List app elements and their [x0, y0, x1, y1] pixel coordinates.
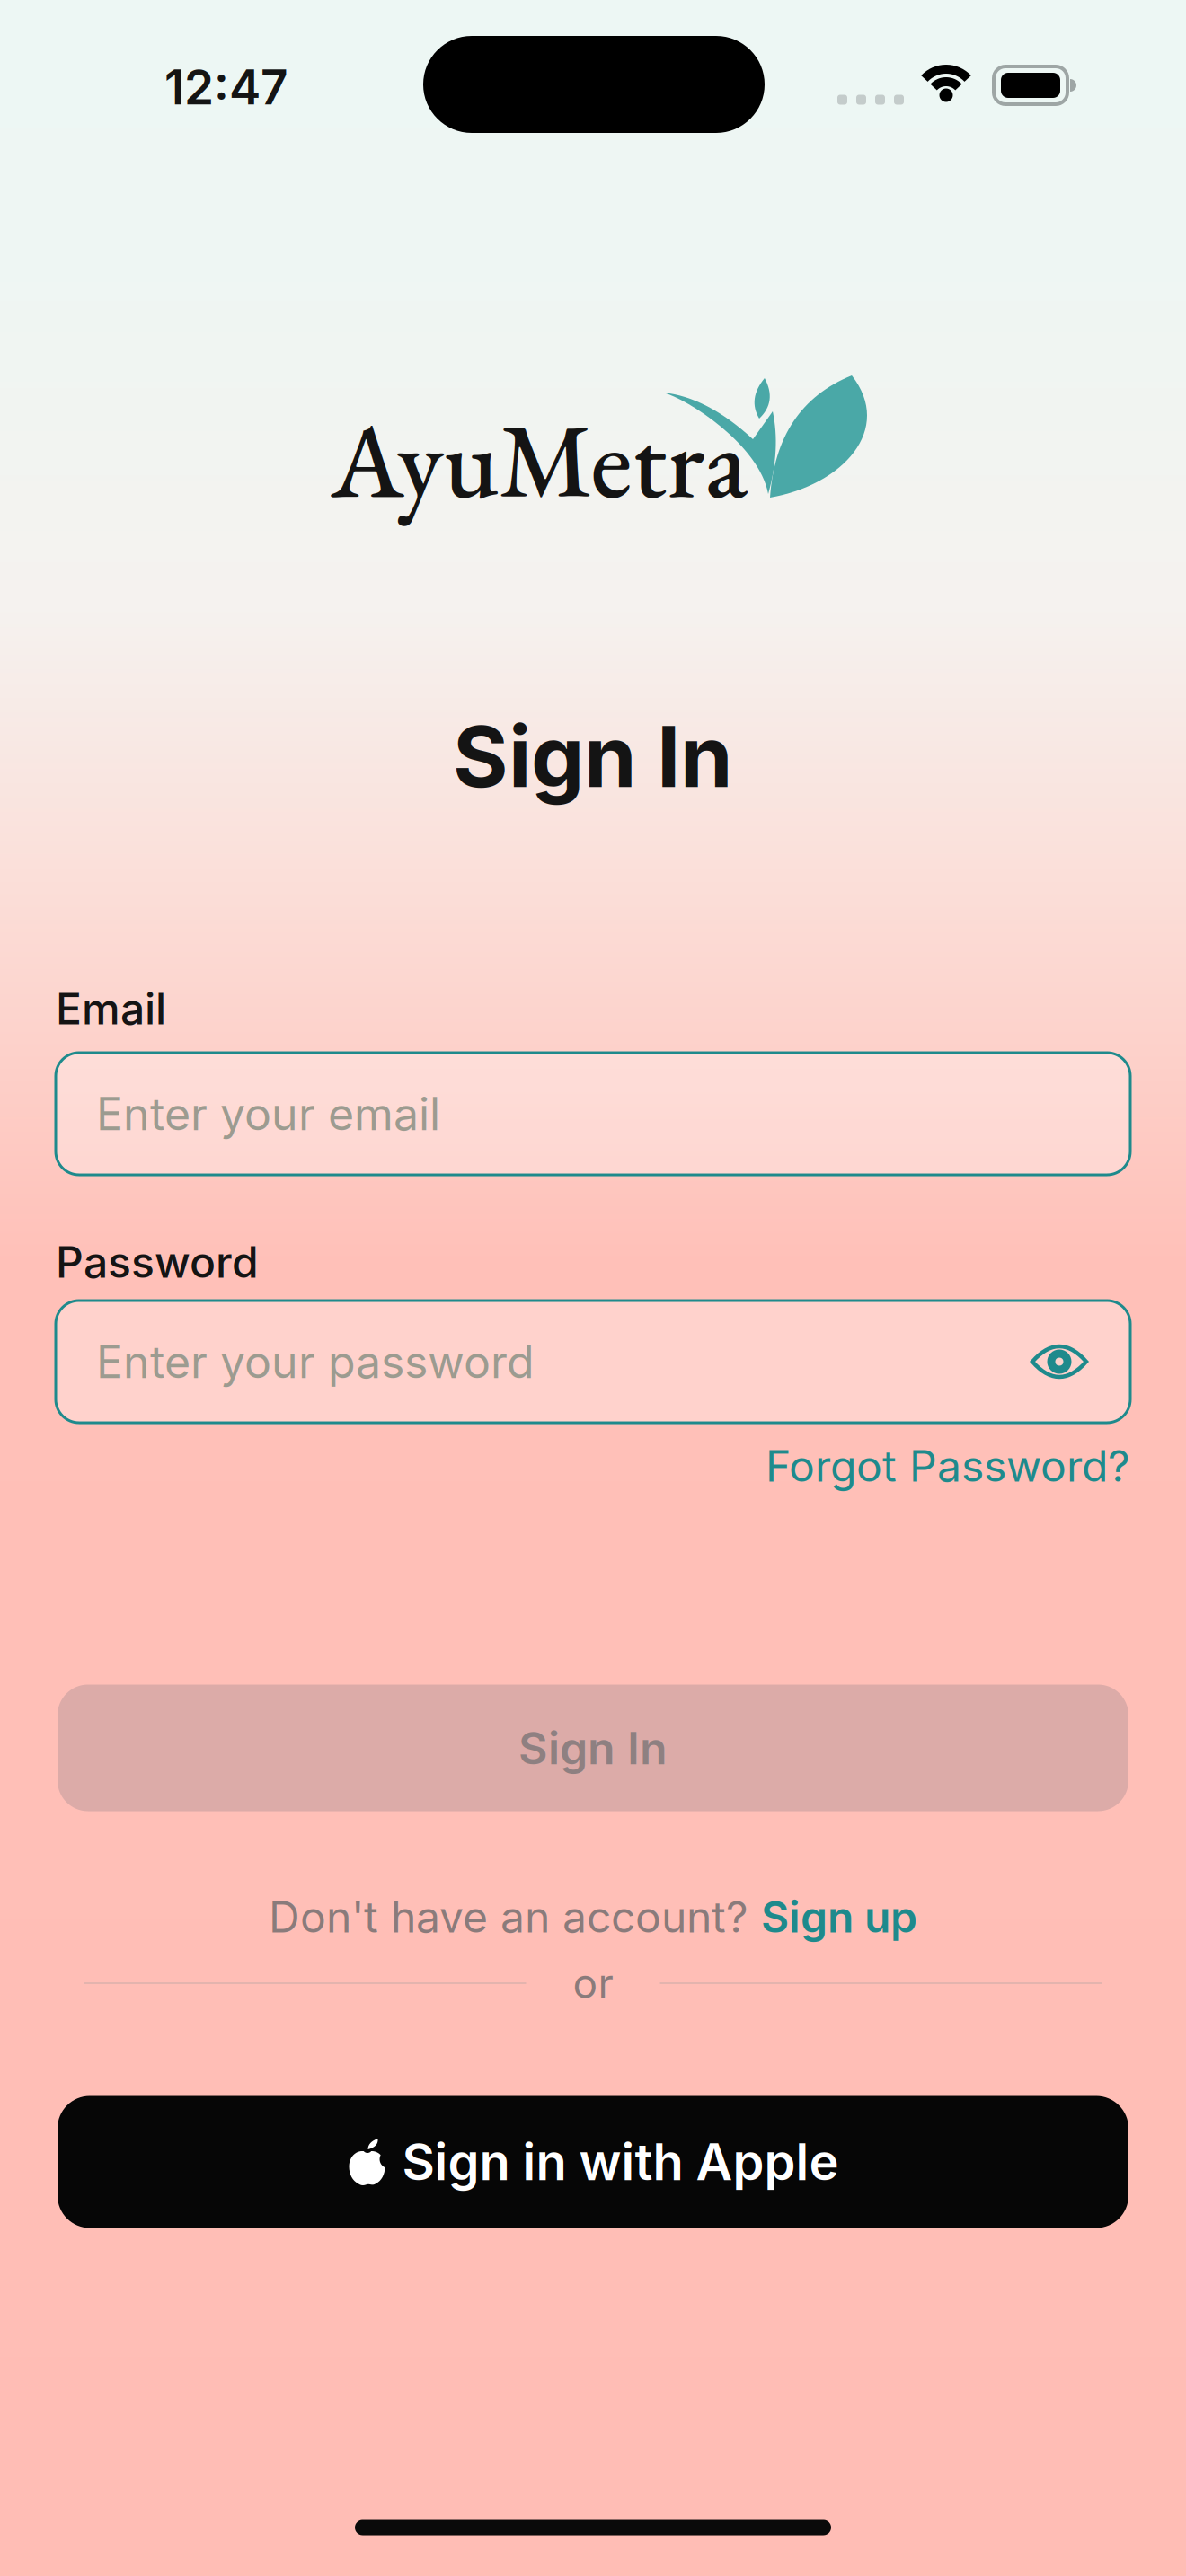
staticText: Sign In — [518, 1721, 668, 1775]
staticText: Sign In — [453, 705, 733, 807]
staticText: AyuMetra — [331, 393, 747, 527]
staticText: 12:47 — [164, 58, 288, 116]
button[interactable]: Forgot Password? — [766, 1440, 1130, 1492]
staticText: Don't have an account? — [269, 1891, 748, 1943]
button[interactable]: Sign in with Apple — [58, 2096, 1128, 2228]
button[interactable]: Show password — [1030, 1341, 1089, 1382]
staticText: Forgot Password? — [766, 1440, 1130, 1492]
button[interactable]: Sign In — [58, 1685, 1128, 1811]
staticText: or — [573, 1958, 613, 2008]
staticText: Enter your password — [96, 1335, 535, 1389]
secureTextField[interactable]: Enter your password — [96, 1335, 1030, 1389]
staticText: Enter your email — [96, 1087, 440, 1141]
textField[interactable]: Enter your email — [96, 1087, 1089, 1141]
staticText: Sign in with Apple — [402, 2131, 839, 2192]
staticText: Email — [56, 983, 166, 1035]
button[interactable]: Sign up — [761, 1891, 917, 1943]
staticText: Password — [56, 1236, 259, 1288]
staticText: Sign up — [761, 1891, 917, 1943]
